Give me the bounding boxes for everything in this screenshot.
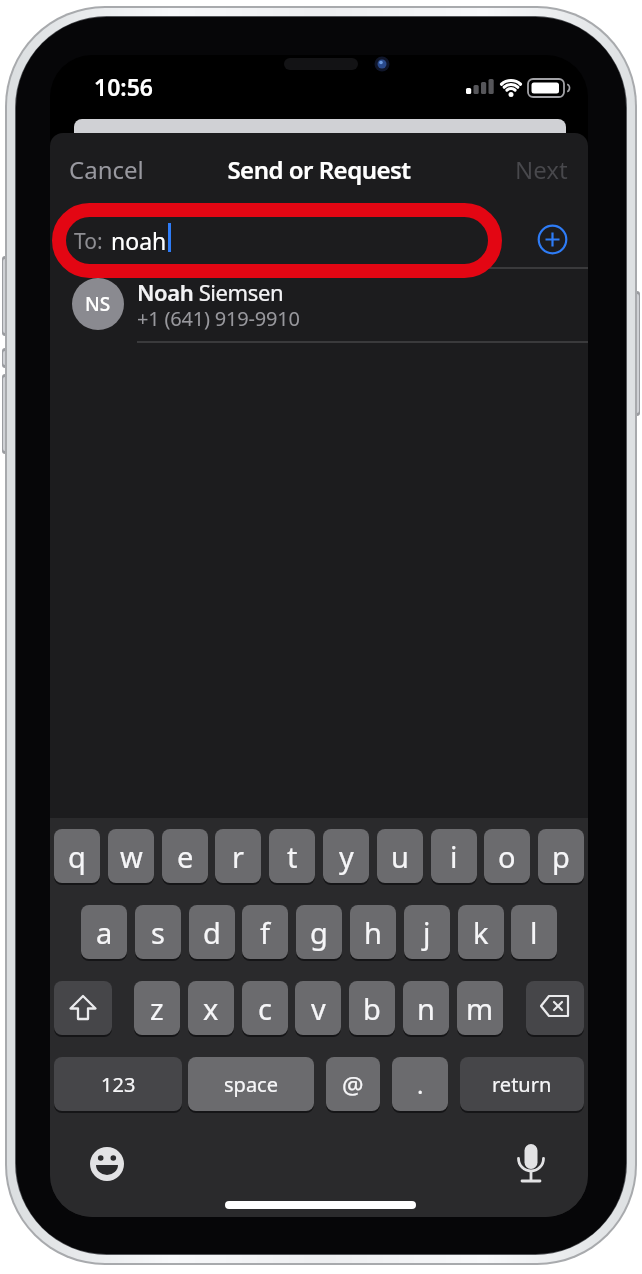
button[interactable]: p — [538, 829, 584, 883]
button[interactable]: n — [403, 981, 449, 1035]
button[interactable]: q — [54, 829, 100, 883]
button[interactable] — [62, 207, 520, 267]
button[interactable]: x — [188, 981, 234, 1035]
button[interactable]: return — [460, 1057, 584, 1111]
button[interactable]: v — [295, 981, 341, 1035]
button[interactable]: l — [511, 905, 557, 959]
button[interactable]: h — [350, 905, 396, 959]
button[interactable]: r — [215, 829, 261, 883]
staticText: x — [203, 989, 219, 1028]
staticText: j — [423, 913, 431, 952]
staticText: @ — [342, 1068, 364, 1101]
staticText: space — [224, 1071, 278, 1098]
button[interactable]: e — [162, 829, 208, 883]
button[interactable]: j — [404, 905, 450, 959]
staticText: h — [364, 913, 382, 952]
staticText: 10:56 — [94, 71, 153, 102]
button[interactable]: z — [134, 981, 180, 1035]
button[interactable] — [526, 981, 584, 1035]
staticText: d — [203, 913, 221, 952]
button[interactable]: space — [188, 1057, 314, 1111]
button[interactable]: d — [189, 905, 235, 959]
staticText: k — [473, 913, 489, 952]
staticText: m — [466, 989, 494, 1028]
staticText: NS — [85, 291, 111, 317]
staticText: a — [96, 913, 113, 952]
button[interactable] — [88, 1145, 126, 1183]
staticText: r — [232, 837, 244, 876]
button[interactable]: a — [81, 905, 127, 959]
button[interactable] — [512, 1141, 550, 1187]
button[interactable]: o — [484, 829, 530, 883]
staticText: To: — [74, 227, 103, 256]
staticText: c — [258, 989, 272, 1028]
staticText: noah — [111, 225, 167, 256]
button[interactable]: c — [242, 981, 288, 1035]
staticText: o — [498, 837, 516, 876]
button[interactable]: k — [458, 905, 504, 959]
staticText: w — [120, 837, 143, 876]
staticText: q — [68, 837, 86, 876]
button[interactable]: w — [108, 829, 154, 883]
button[interactable] — [54, 981, 112, 1035]
staticText: u — [391, 837, 409, 876]
button[interactable] — [537, 224, 568, 255]
staticText: return — [492, 1071, 552, 1098]
button[interactable]: u — [377, 829, 423, 883]
staticText: e — [177, 837, 194, 876]
staticText: b — [363, 989, 381, 1028]
button[interactable]: m — [457, 981, 503, 1035]
button[interactable]: g — [296, 905, 342, 959]
button[interactable]: . — [392, 1057, 448, 1111]
staticText: f — [260, 913, 270, 952]
staticText: n — [417, 989, 435, 1028]
staticText: i — [450, 837, 458, 876]
staticText: s — [151, 913, 165, 952]
button[interactable]: t — [269, 829, 315, 883]
button[interactable]: Cancel — [69, 153, 144, 186]
button[interactable]: y — [323, 829, 369, 883]
button[interactable]: i — [431, 829, 477, 883]
staticText: t — [287, 837, 298, 876]
staticText: . — [417, 1068, 424, 1101]
staticText: g — [310, 913, 328, 952]
button[interactable]: f — [242, 905, 288, 959]
button[interactable]: 123 — [54, 1057, 182, 1111]
staticText: y — [339, 837, 354, 876]
button[interactable]: NS — [50, 269, 588, 341]
staticText: +1 (641) 919-9910 — [137, 305, 300, 332]
staticText: Noah Siemsen — [137, 277, 284, 307]
staticText: v — [311, 989, 326, 1028]
button[interactable]: Next — [515, 153, 568, 186]
staticText: l — [530, 913, 538, 952]
staticText: z — [150, 989, 164, 1028]
staticText: p — [552, 837, 570, 876]
button[interactable]: s — [135, 905, 181, 959]
staticText: Send or Request — [50, 153, 588, 186]
button[interactable]: b — [349, 981, 395, 1035]
staticText: 123 — [101, 1071, 136, 1098]
button[interactable]: @ — [326, 1057, 380, 1111]
